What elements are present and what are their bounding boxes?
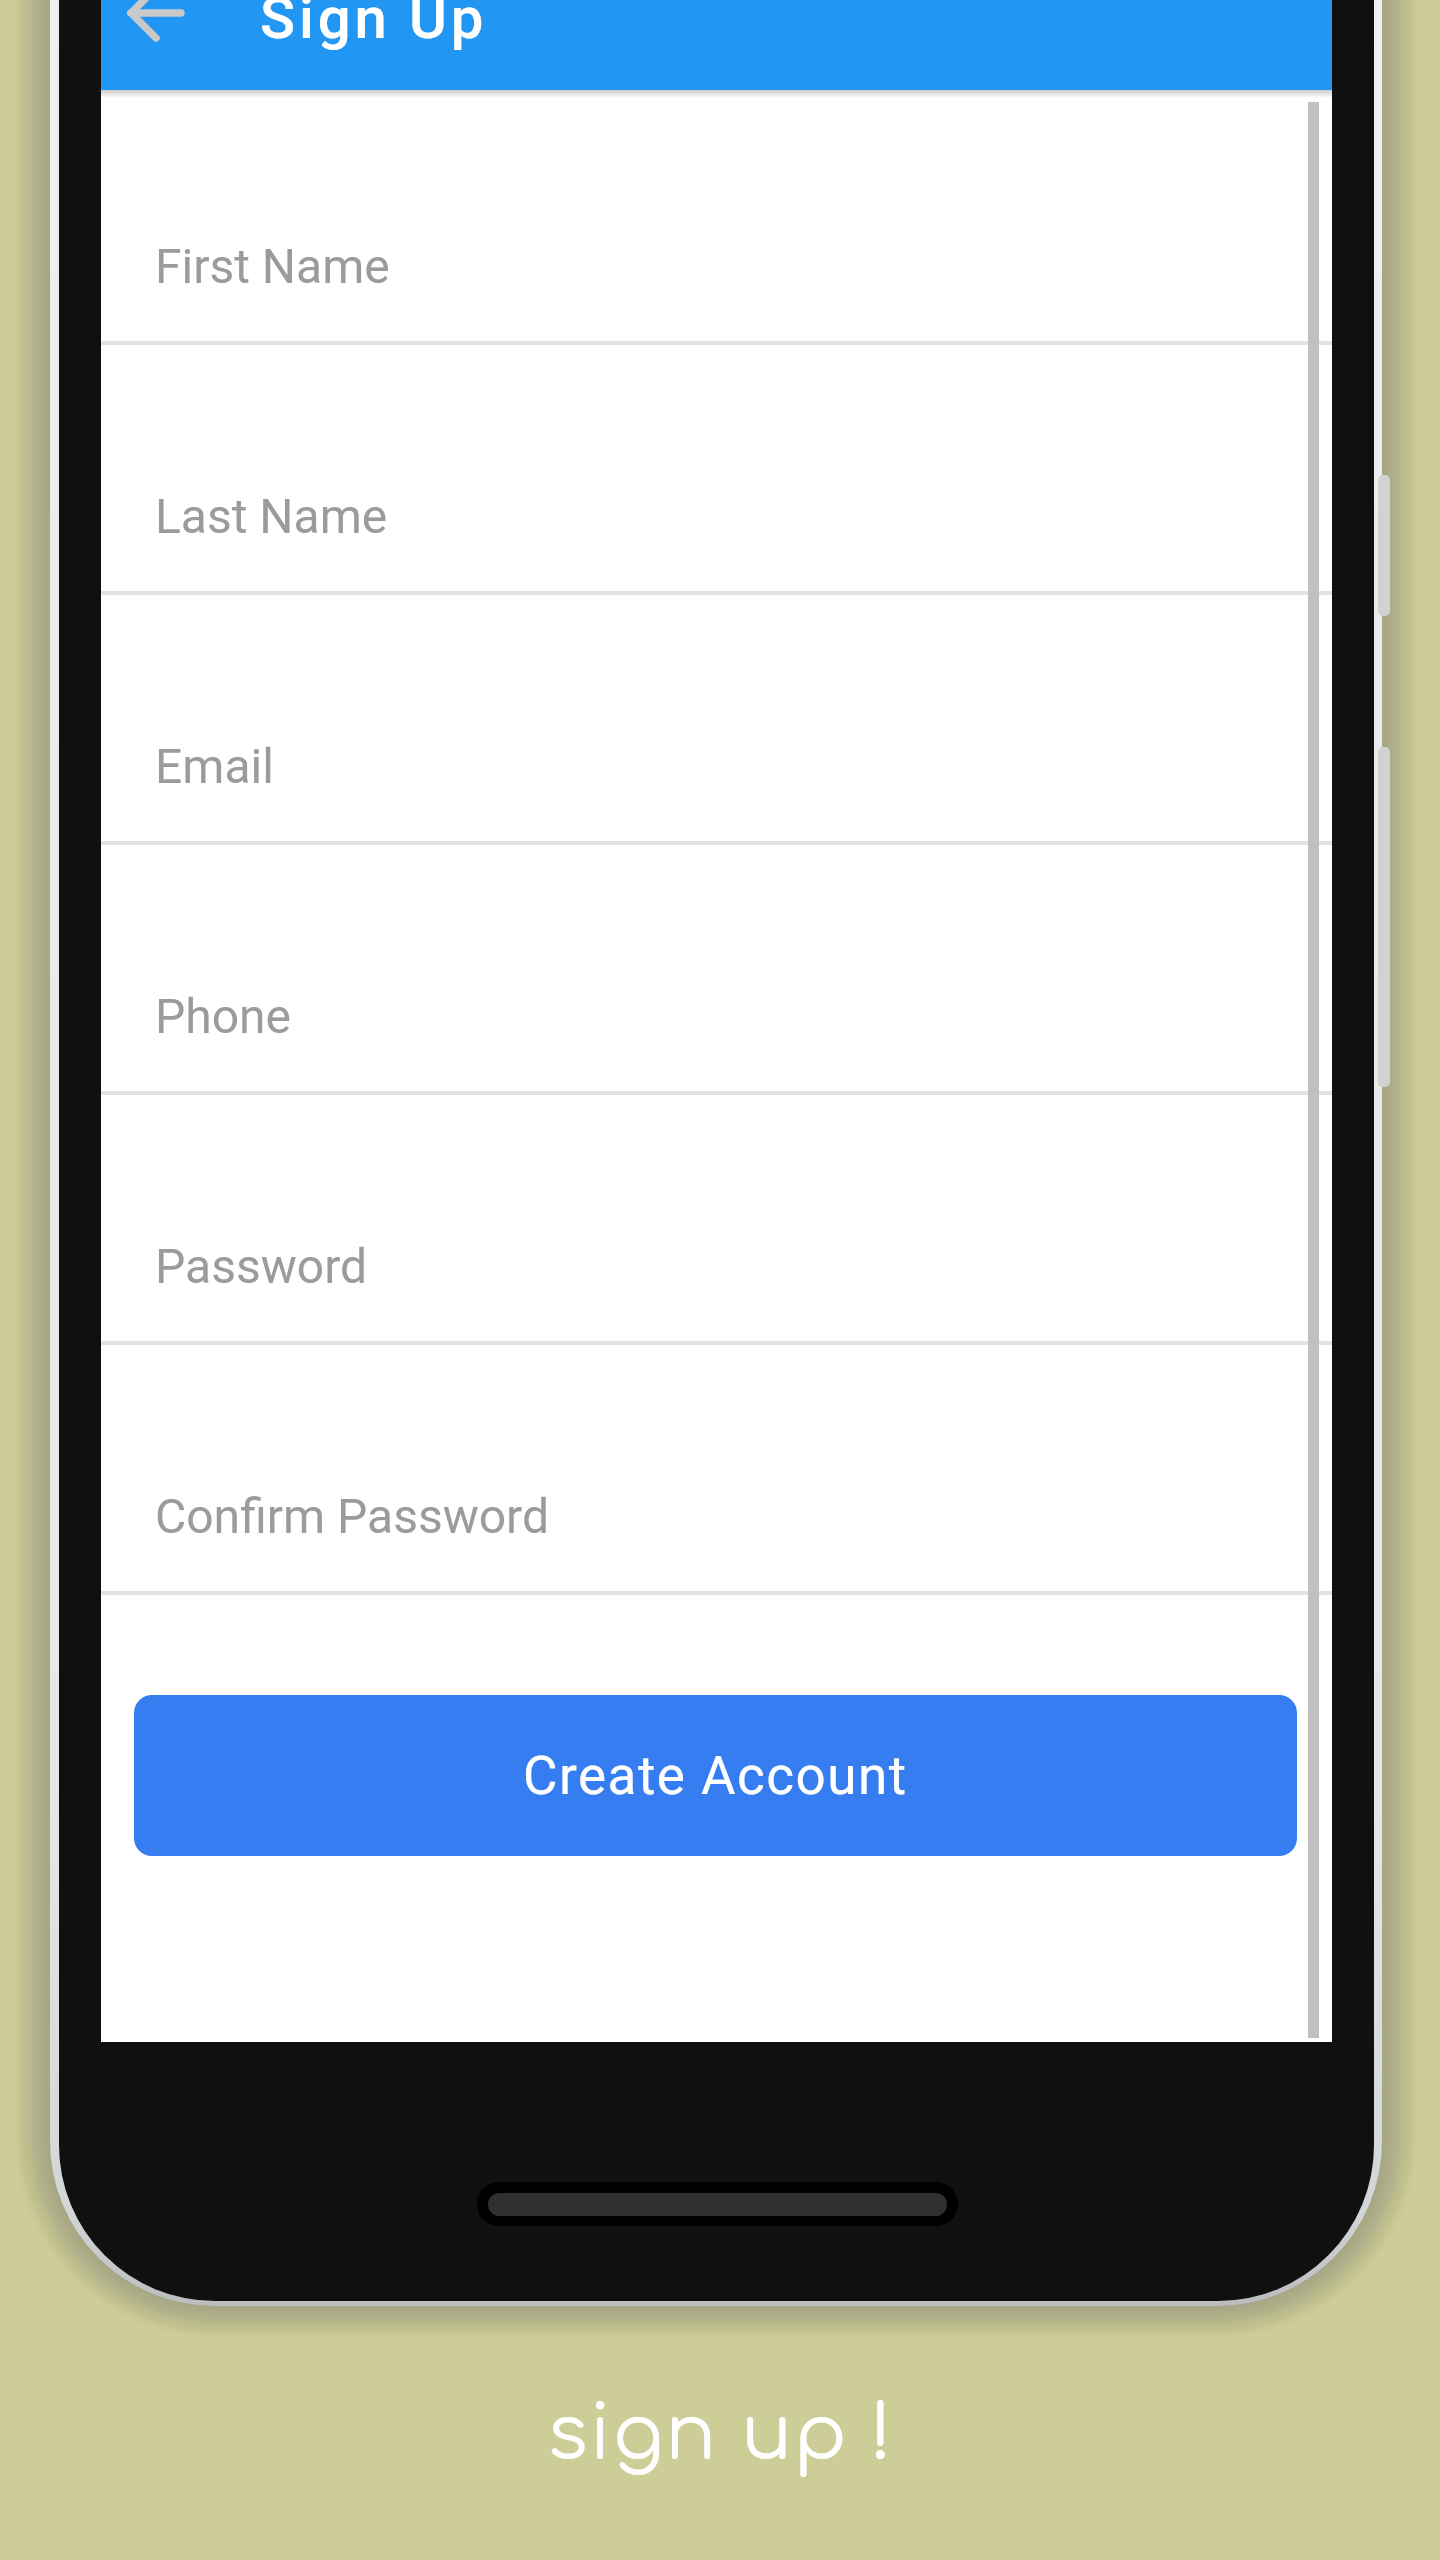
button[interactable]: First Name bbox=[101, 90, 1332, 345]
button[interactable]: Last Name bbox=[101, 345, 1332, 595]
staticText: Password bbox=[155, 1238, 368, 1294]
staticText: Last Name bbox=[155, 488, 388, 544]
button[interactable]: Phone bbox=[101, 845, 1332, 1095]
button[interactable]: Create Account bbox=[134, 1695, 1297, 1856]
button[interactable]: Confirm Password bbox=[101, 1345, 1332, 1595]
staticText: Phone bbox=[155, 988, 292, 1044]
staticText: Create Account bbox=[523, 1745, 908, 1807]
staticText: Sign Up bbox=[260, 0, 488, 52]
staticText: Confirm Password bbox=[155, 1488, 550, 1544]
staticText: Email bbox=[155, 738, 274, 794]
button[interactable]: Password bbox=[101, 1095, 1332, 1345]
staticText: First Name bbox=[155, 238, 390, 294]
button[interactable]: Back bbox=[101, 0, 221, 50]
staticText: sign up ! bbox=[547, 2393, 894, 2477]
button[interactable]: Email bbox=[101, 595, 1332, 845]
